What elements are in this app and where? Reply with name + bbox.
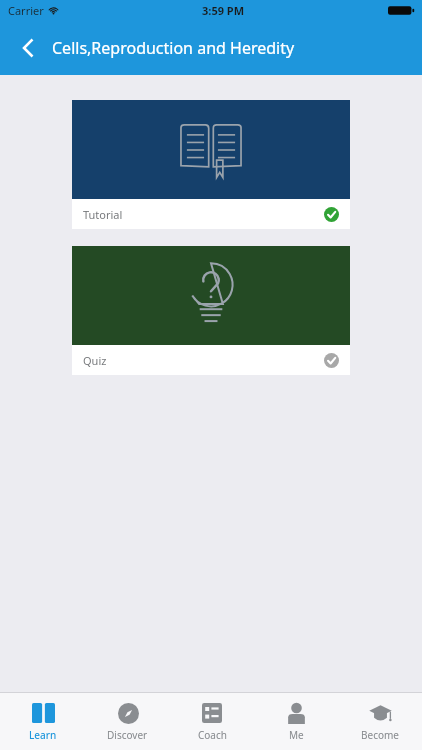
button[interactable]: Become bbox=[338, 693, 422, 750]
button[interactable]: Back bbox=[8, 28, 48, 68]
staticText: Become bbox=[361, 728, 399, 742]
staticText: Cells,Reproduction and Heredity bbox=[52, 37, 295, 59]
staticText: Carrier bbox=[8, 3, 44, 18]
staticText: Quiz bbox=[83, 353, 107, 368]
button[interactable]: Tutorial bbox=[72, 100, 350, 229]
button[interactable]: Learn bbox=[0, 693, 85, 750]
staticText: Coach bbox=[198, 728, 227, 742]
staticText: Me bbox=[289, 728, 304, 742]
staticText: Tutorial bbox=[83, 207, 123, 222]
staticText: Discover bbox=[107, 728, 148, 742]
button[interactable]: Quiz bbox=[72, 246, 350, 375]
button[interactable]: Me bbox=[254, 693, 338, 750]
staticText: 3:59 PM bbox=[202, 3, 245, 18]
button[interactable]: Coach bbox=[170, 693, 254, 750]
button[interactable]: Discover bbox=[85, 693, 170, 750]
staticText: Learn bbox=[29, 728, 57, 742]
